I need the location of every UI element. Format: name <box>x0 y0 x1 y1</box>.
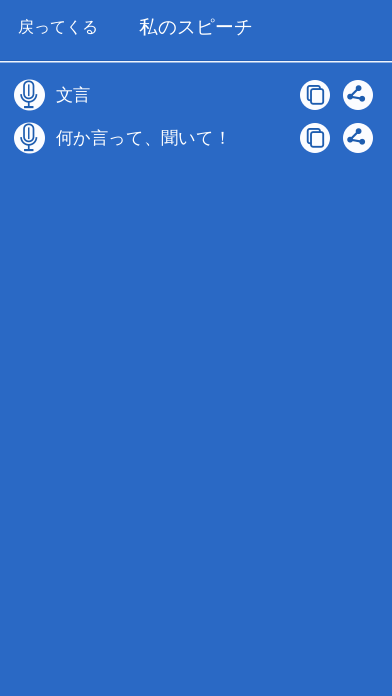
button[interactable]: 文言 <box>14 73 300 116</box>
staticText: 戻ってくる <box>18 17 98 37</box>
button[interactable]: Share <box>343 80 373 110</box>
button[interactable]: 戻ってくる <box>0 6 116 48</box>
button[interactable]: Copy <box>300 123 330 153</box>
staticText: 文言 <box>56 84 90 106</box>
button[interactable]: Share <box>343 123 373 153</box>
staticText: 何か言って、聞いて！ <box>56 127 231 149</box>
staticText: 私のスピーチ <box>139 15 253 38</box>
button[interactable]: 何か言って、聞いて！ <box>14 116 300 159</box>
button[interactable]: Copy <box>300 80 330 110</box>
